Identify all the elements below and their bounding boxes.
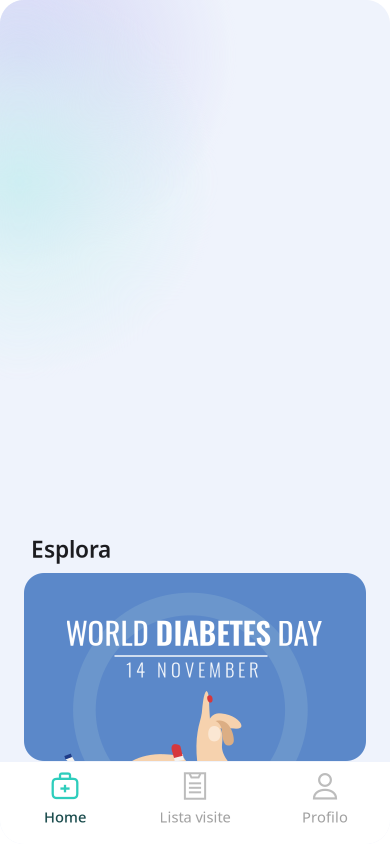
staticText: 14 NOVEMBER bbox=[126, 655, 259, 683]
staticText: WORLD DIABETES DAY bbox=[65, 610, 322, 654]
staticText: Profilo bbox=[302, 807, 348, 826]
staticText: Lista visite bbox=[159, 807, 230, 826]
button[interactable]: Lista visite bbox=[130, 762, 260, 844]
button[interactable]: Home bbox=[0, 762, 130, 844]
staticText: Home bbox=[44, 807, 86, 826]
button[interactable]: Profilo bbox=[260, 762, 390, 844]
staticText: Esplora bbox=[31, 534, 111, 564]
